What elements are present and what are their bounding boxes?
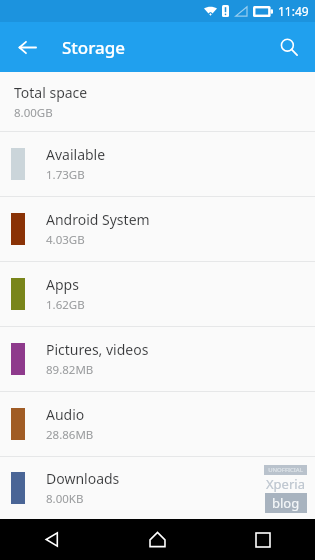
staticText: blog xyxy=(272,494,300,512)
staticText: Pictures, videos xyxy=(46,340,149,359)
staticText: 28.86MB xyxy=(46,427,94,443)
staticText: 8.00KB xyxy=(46,491,84,507)
button[interactable]: Home xyxy=(105,519,210,560)
staticText: Apps xyxy=(46,275,79,294)
button[interactable]: Downloads xyxy=(0,457,315,519)
staticText: 11:49 xyxy=(278,3,309,19)
staticText: UNOFFICIAL xyxy=(268,466,303,474)
staticText: 8.00GB xyxy=(14,105,53,121)
button[interactable]: Back xyxy=(0,519,105,560)
button[interactable]: Search xyxy=(271,29,307,65)
button[interactable]: Back xyxy=(10,30,44,64)
staticText: 89.82MB xyxy=(46,362,94,378)
staticText: Xperia xyxy=(266,475,305,493)
button[interactable]: Android System xyxy=(0,197,315,261)
button[interactable]: Audio xyxy=(0,392,315,456)
staticText: Android System xyxy=(46,210,150,229)
staticText: 4.03GB xyxy=(46,232,85,248)
button[interactable]: Recent apps xyxy=(210,519,315,560)
staticText: Total space xyxy=(14,83,88,102)
staticText: Available xyxy=(46,145,106,164)
staticText: 1.62GB xyxy=(46,297,85,313)
staticText: Downloads xyxy=(46,469,120,488)
button[interactable]: Total space xyxy=(0,72,315,131)
staticText: Audio xyxy=(46,405,85,424)
staticText: 1.73GB xyxy=(46,167,85,183)
staticText: Storage xyxy=(62,36,126,59)
button[interactable]: Pictures, videos xyxy=(0,327,315,391)
button[interactable]: Available xyxy=(0,132,315,196)
button[interactable]: Apps xyxy=(0,262,315,326)
